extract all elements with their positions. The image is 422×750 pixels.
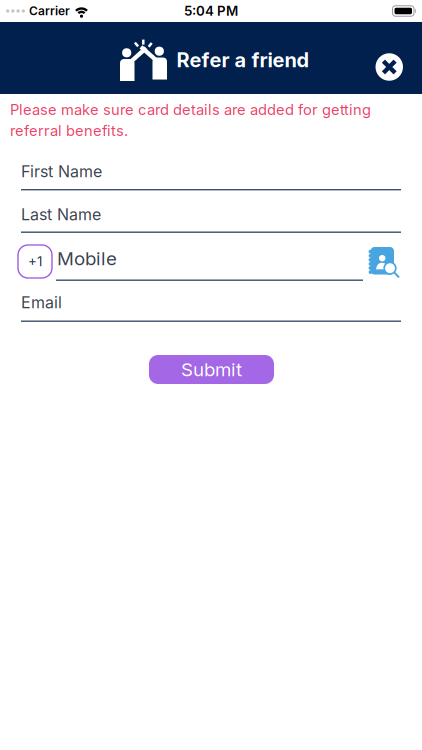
button[interactable]: Submit [149, 355, 274, 384]
staticText: Email [21, 293, 62, 312]
button[interactable]: First Name [21, 162, 401, 190]
button[interactable]: Country code +1 [18, 245, 52, 278]
staticText: 5:04 PM [184, 3, 238, 19]
staticText: Mobile [57, 247, 117, 269]
staticText: referral benefits. [10, 122, 128, 139]
staticText: Last Name [21, 205, 101, 224]
staticText: Carrier [29, 4, 70, 18]
button[interactable]: Last Name [21, 205, 401, 233]
button[interactable]: Close [375, 53, 403, 81]
button[interactable]: Pick from contacts [368, 247, 401, 280]
staticText: Please make sure card details are added … [10, 101, 371, 118]
staticText: Submit [181, 358, 242, 380]
staticText: First Name [21, 162, 102, 181]
button[interactable]: Mobile [56, 247, 363, 281]
staticText: Refer a friend [176, 48, 309, 72]
button[interactable]: Email [21, 293, 401, 322]
staticText: +1 [28, 254, 42, 269]
